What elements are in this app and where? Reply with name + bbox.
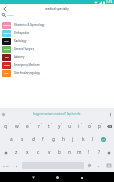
staticText: q	[4, 123, 7, 130]
button[interactable]: ?	[94, 146, 104, 159]
button[interactable]: ADI	[0, 53, 114, 61]
staticText: y	[58, 123, 61, 130]
staticText: t	[48, 123, 50, 130]
staticText: Emergency Medicine	[14, 63, 40, 67]
button[interactable]: Enter	[98, 133, 114, 146]
button[interactable]: EMER	[0, 61, 114, 69]
button[interactable]: u	[64, 120, 74, 133]
staticText: z	[15, 149, 18, 156]
staticText: 3	[30, 122, 32, 125]
button[interactable]: ,	[11, 159, 22, 172]
button[interactable]: ?123	[0, 159, 11, 172]
button[interactable]: l	[88, 133, 98, 146]
button[interactable]: d	[28, 133, 38, 146]
staticText: Radiology	[14, 39, 27, 43]
button[interactable]: Shift	[0, 146, 11, 159]
button[interactable]: g	[48, 133, 58, 146]
staticText: u	[68, 123, 71, 130]
button[interactable]: More options	[108, 112, 113, 117]
button[interactable]: j	[68, 133, 78, 146]
button[interactable]: n	[64, 146, 74, 159]
staticText: m	[77, 149, 82, 156]
button[interactable]: c	[33, 146, 44, 159]
staticText: s	[21, 136, 24, 143]
staticText: SURG	[4, 48, 10, 51]
staticText: medical specialty	[45, 7, 69, 11]
staticText: w	[15, 123, 19, 130]
staticText: 1:15	[106, 0, 113, 4]
button[interactable]: ENT	[0, 69, 114, 77]
staticText: EMER	[4, 64, 10, 67]
button[interactable]: !	[84, 146, 94, 159]
button[interactable]: Keyboard settings	[1, 112, 6, 117]
staticText: e	[26, 123, 29, 130]
button[interactable]: e	[22, 120, 33, 133]
staticText: 1	[8, 122, 10, 125]
button[interactable]: q	[0, 120, 11, 133]
staticText: !	[88, 149, 90, 156]
staticText: General Surgery	[14, 47, 35, 51]
staticText: ADI	[5, 56, 9, 59]
button[interactable]: Shift	[104, 146, 114, 159]
button[interactable]: Back	[29, 173, 38, 182]
button[interactable]: w	[11, 120, 22, 133]
button[interactable]: i	[74, 120, 84, 133]
button[interactable]: z	[11, 146, 22, 159]
staticText: ,	[16, 162, 18, 169]
staticText: ENT	[4, 72, 9, 75]
button[interactable]: Backspace	[104, 120, 114, 133]
staticText: 4	[41, 122, 43, 125]
button[interactable]: x	[22, 146, 33, 159]
button[interactable]: .	[94, 159, 104, 172]
staticText: c	[37, 149, 40, 156]
button[interactable]: SURG	[0, 45, 114, 53]
staticText: o	[88, 123, 91, 130]
staticText: b	[58, 149, 61, 156]
button[interactable]: s	[17, 133, 28, 146]
button[interactable]: OBGYN	[0, 21, 114, 29]
button[interactable]: r	[33, 120, 44, 133]
button[interactable]: y	[54, 120, 64, 133]
button[interactable]: RAD	[0, 37, 114, 45]
staticText: k	[82, 136, 85, 143]
button[interactable]: v	[44, 146, 54, 159]
staticText: Adiatery	[14, 55, 25, 59]
button[interactable]: k	[78, 133, 88, 146]
staticText: h	[62, 136, 65, 143]
staticText: Otorhinolaryngology	[14, 71, 40, 75]
button[interactable]: a	[6, 133, 17, 146]
button[interactable]: ORTHO	[0, 29, 114, 37]
staticText: f	[42, 136, 44, 143]
button[interactable]: Emoji	[84, 159, 94, 172]
button[interactable]: Recents	[77, 173, 86, 182]
staticText: g	[52, 136, 55, 143]
staticText: a	[10, 136, 13, 143]
button[interactable]: f	[38, 133, 48, 146]
staticText: Orthopedics	[14, 31, 30, 35]
staticText: ?123	[3, 164, 9, 167]
staticText: 6	[61, 122, 63, 125]
button[interactable]: Home	[53, 173, 62, 182]
button[interactable]: p	[94, 120, 104, 133]
button[interactable]: h	[58, 133, 68, 146]
staticText: p	[98, 123, 101, 130]
button[interactable]: b	[54, 146, 64, 159]
staticText: Obstetrics & Gynecology	[14, 23, 45, 27]
staticText: 5	[51, 122, 53, 125]
staticText: 9	[91, 122, 93, 125]
button[interactable]: Back	[1, 5, 9, 13]
staticText: 0	[101, 122, 103, 125]
button[interactable]: Switch keyboard	[104, 159, 114, 172]
staticText: ?	[98, 149, 101, 156]
button[interactable]: m	[74, 146, 84, 159]
staticText: RAD	[4, 40, 9, 43]
staticText: x	[26, 149, 29, 156]
button[interactable]: o	[84, 120, 94, 133]
staticText: r	[38, 123, 40, 130]
staticText: i	[78, 123, 80, 130]
button[interactable]: t	[44, 120, 54, 133]
staticText: 7	[71, 122, 73, 125]
staticText: n	[68, 149, 71, 156]
staticText: l	[92, 136, 94, 143]
